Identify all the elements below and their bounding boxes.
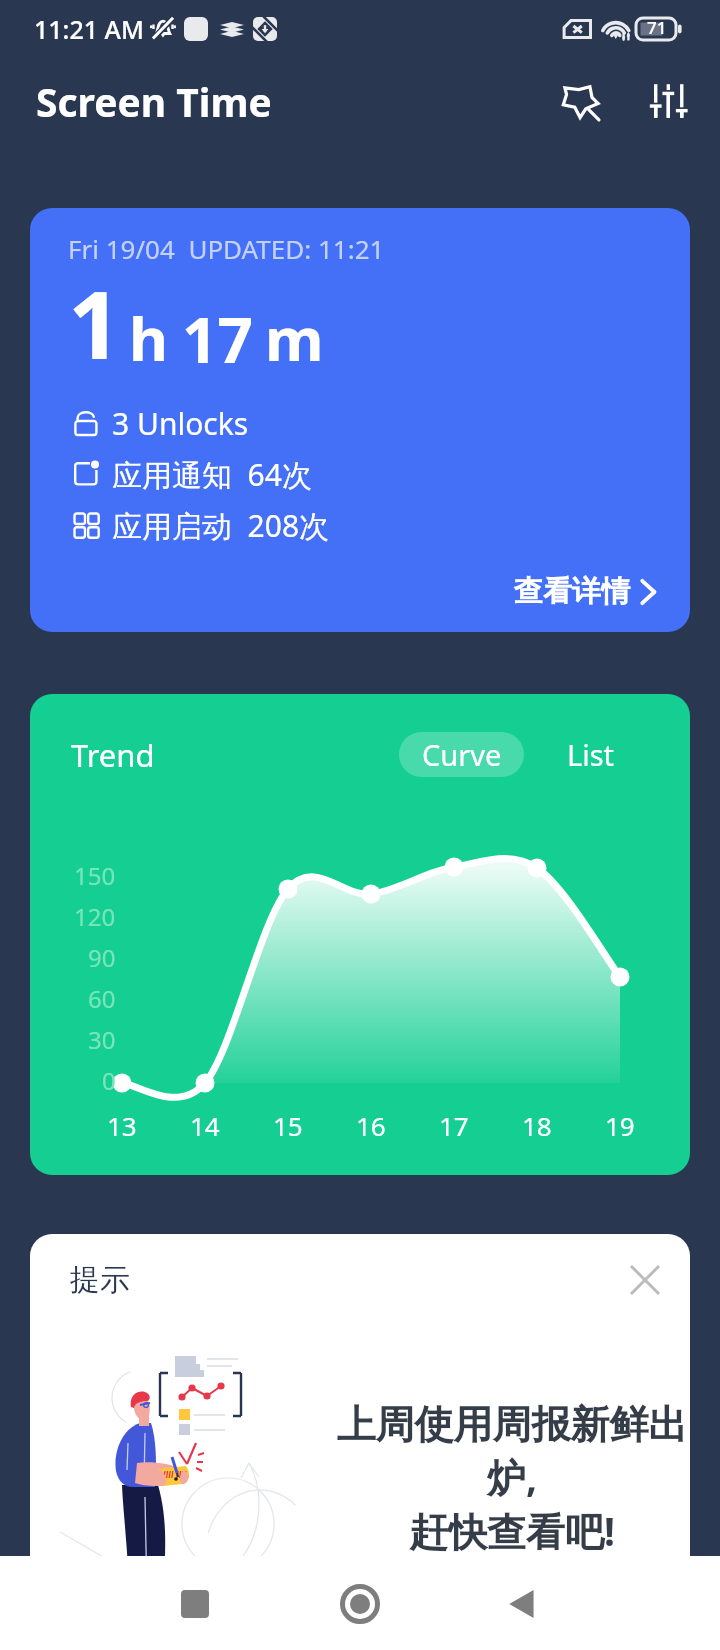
staticText: 1: [68, 260, 122, 387]
staticText: m: [265, 297, 324, 379]
staticText: 18: [522, 1108, 552, 1143]
staticText: 16: [356, 1108, 386, 1143]
button[interactable]: Recents: [163, 1572, 227, 1636]
staticText: Fri 19/04 UPDATED: 11:21: [68, 231, 385, 266]
staticText: 0: [102, 1064, 116, 1097]
staticText: List: [567, 735, 615, 774]
button[interactable]: Curve: [399, 732, 524, 777]
staticText: 应用启动 208次: [112, 505, 330, 542]
staticText: 应用通知 64次: [112, 454, 312, 491]
staticText: 19: [605, 1108, 635, 1143]
staticText: 60: [88, 982, 116, 1015]
staticText: 17: [182, 297, 253, 381]
button[interactable]: Close: [621, 1256, 669, 1304]
staticText: 120: [74, 900, 116, 933]
staticText: 13: [107, 1108, 137, 1143]
staticText: Trend: [71, 734, 155, 776]
button[interactable]: List: [546, 732, 636, 777]
button[interactable]: Home: [328, 1572, 392, 1636]
button[interactable]: Magic wand: [544, 65, 616, 137]
staticText: 15: [273, 1108, 303, 1143]
button[interactable]: Fri 19/04 UPDATED: 11:21: [30, 208, 690, 632]
staticText: 11:21 AM: [34, 12, 144, 46]
staticText: 提示: [70, 1261, 130, 1299]
staticText: 14: [190, 1108, 220, 1143]
staticText: 90: [88, 941, 116, 974]
staticText: Curve: [422, 735, 502, 774]
staticText: 30: [88, 1023, 116, 1056]
staticText: 查看详情: [514, 573, 630, 610]
button[interactable]: Settings: [634, 65, 706, 137]
staticText: 上周使用周报新鲜出 炉, 赶快查看吧!: [332, 1400, 690, 1557]
button[interactable]: 查看详情: [508, 567, 670, 616]
staticText: 3 Unlocks: [112, 403, 249, 440]
staticText: 150: [74, 859, 116, 892]
staticText: Screen Time: [36, 75, 272, 128]
staticText: h: [129, 297, 168, 379]
button[interactable]: Back: [491, 1572, 555, 1636]
staticText: 17: [439, 1108, 469, 1143]
staticText: 71: [647, 16, 667, 38]
